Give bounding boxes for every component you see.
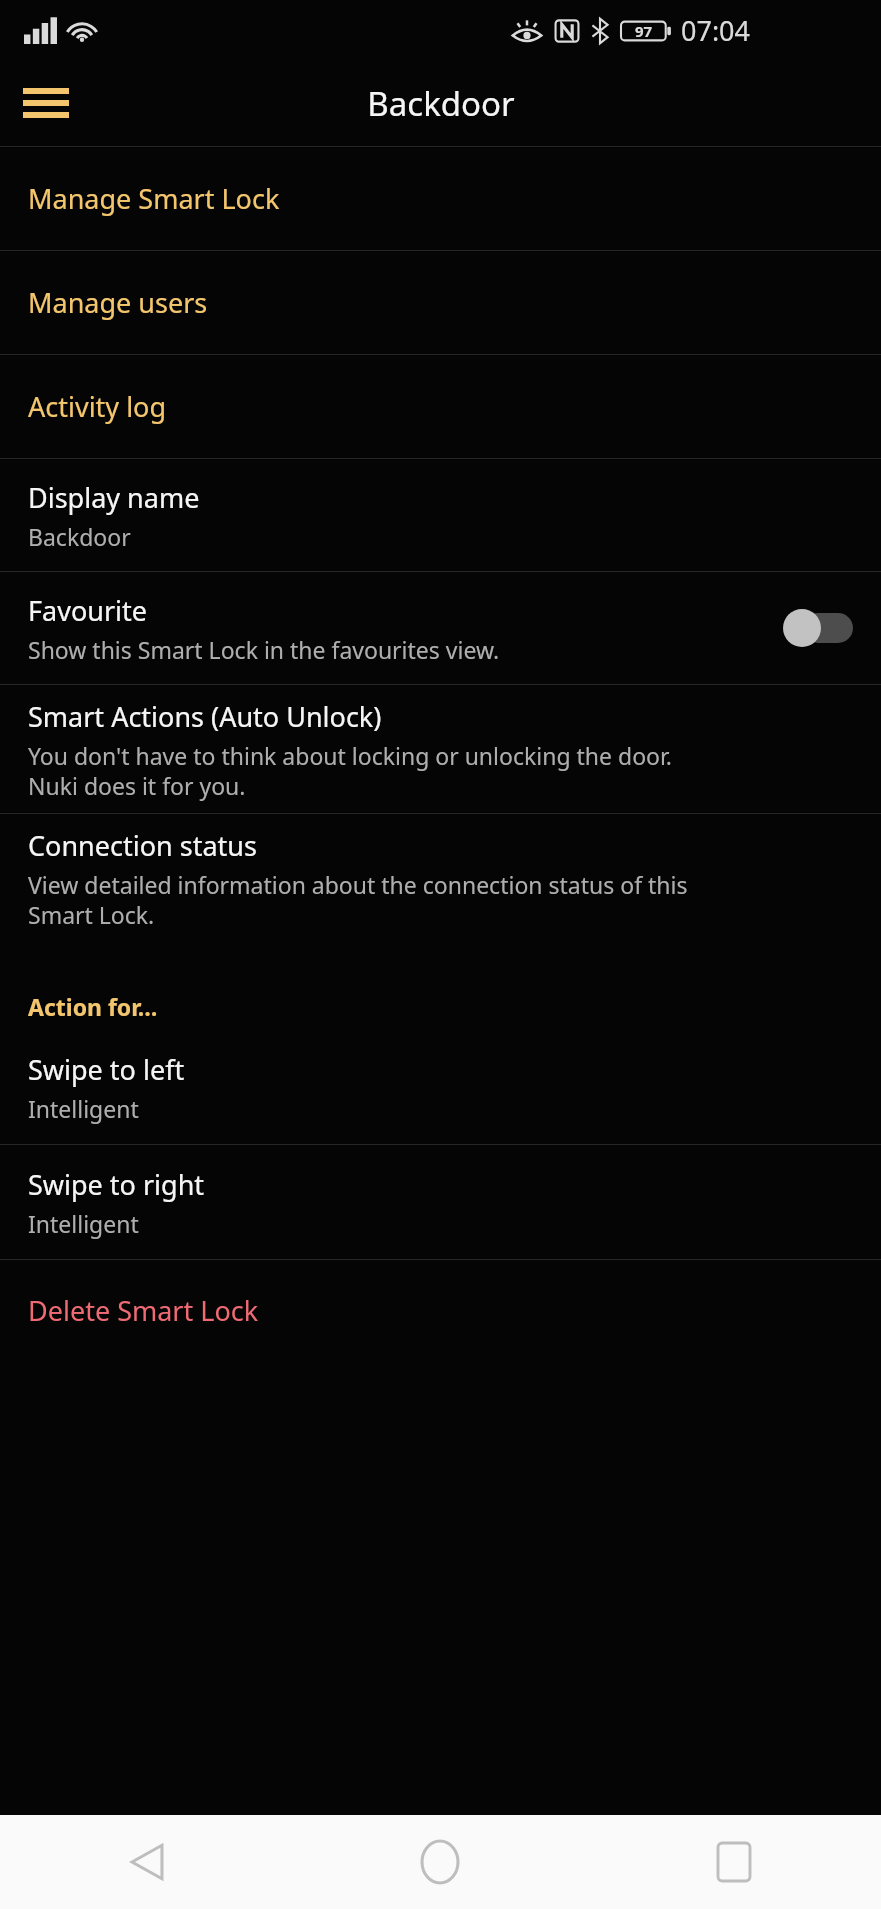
- button[interactable]: Favourite: [0, 572, 881, 684]
- button[interactable]: Home: [293, 1815, 587, 1909]
- staticText: Connection status: [28, 827, 257, 864]
- button[interactable]: Delete Smart Lock: [0, 1260, 881, 1360]
- staticText: Backdoor: [28, 521, 131, 552]
- button[interactable]: Swipe to left: [0, 1030, 881, 1144]
- staticText: 07:04: [681, 12, 751, 49]
- staticText: Swipe to left: [28, 1051, 185, 1088]
- button[interactable]: Open navigation menu: [6, 63, 86, 143]
- staticText: 97: [635, 21, 653, 41]
- button[interactable]: Recent apps: [587, 1815, 881, 1909]
- staticText: Manage Smart Lock: [28, 180, 280, 217]
- staticText: You don't have to think about locking or…: [28, 740, 672, 801]
- staticText: Intelligent: [28, 1093, 139, 1124]
- staticText: Intelligent: [28, 1208, 139, 1239]
- staticText: View detailed information about the conn…: [28, 869, 688, 930]
- button[interactable]: Swipe to right: [0, 1145, 881, 1259]
- button[interactable]: Display name: [0, 459, 881, 571]
- staticText: Backdoor: [367, 81, 515, 126]
- button[interactable]: Connection status: [0, 814, 881, 942]
- staticText: Show this Smart Lock in the favourites v…: [28, 634, 500, 665]
- staticText: Action for…: [28, 991, 158, 1022]
- button[interactable]: Favourite toggle, off: [783, 605, 853, 651]
- staticText: Display name: [28, 479, 200, 516]
- staticText: Smart Actions (Auto Unlock): [28, 698, 382, 735]
- staticText: Manage users: [28, 284, 208, 321]
- button[interactable]: Smart Actions (Auto Unlock): [0, 685, 881, 813]
- staticText: Delete Smart Lock: [28, 1292, 259, 1329]
- staticText: Favourite: [28, 592, 147, 629]
- button[interactable]: Back: [0, 1815, 293, 1909]
- button[interactable]: Activity log: [0, 355, 881, 458]
- staticText: Activity log: [28, 388, 167, 425]
- button[interactable]: Manage Smart Lock: [0, 147, 881, 250]
- button[interactable]: Manage users: [0, 251, 881, 354]
- staticText: Swipe to right: [28, 1166, 205, 1203]
